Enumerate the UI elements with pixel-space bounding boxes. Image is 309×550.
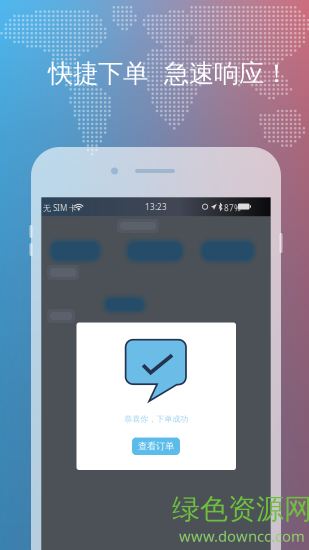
staticText: 绿色资源网 (172, 492, 309, 526)
button[interactable]: 查看订单 (132, 437, 180, 455)
staticText: 快捷下单 急速响应！ (48, 58, 289, 89)
staticText: www.downcc.com (179, 526, 305, 546)
staticText: 13:23 (145, 201, 167, 212)
staticText: 恭喜你，下单成功 (124, 414, 188, 424)
staticText: 无 SIM 卡 (43, 203, 77, 213)
staticText: 查看订单 (138, 440, 174, 452)
staticText: 87% (224, 203, 241, 213)
